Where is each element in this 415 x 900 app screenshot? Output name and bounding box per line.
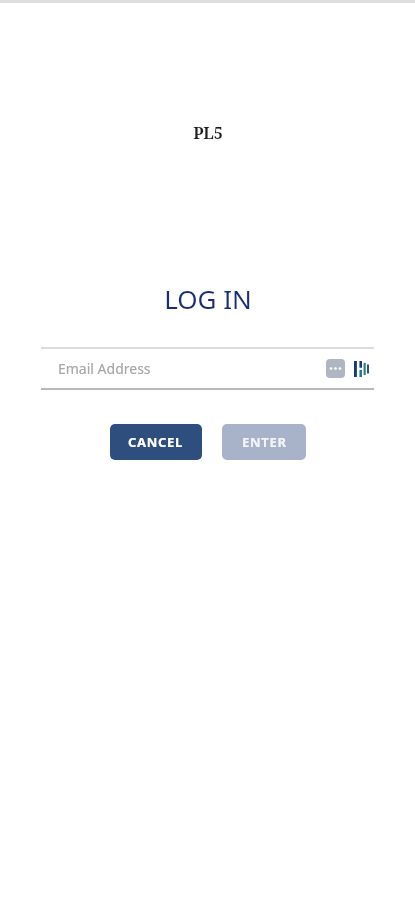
button[interactable]: CANCEL <box>110 424 202 460</box>
staticText: LOG IN <box>164 281 252 316</box>
staticText: CANCEL <box>128 433 184 451</box>
staticText: PL5 <box>193 122 223 144</box>
button[interactable]: More options <box>326 359 345 378</box>
button[interactable]: Email Address <box>41 349 374 388</box>
staticText: ENTER <box>242 433 287 451</box>
button[interactable]: Scan <box>352 359 372 379</box>
button[interactable]: ENTER <box>222 424 306 460</box>
staticText: Email Address <box>58 359 326 378</box>
